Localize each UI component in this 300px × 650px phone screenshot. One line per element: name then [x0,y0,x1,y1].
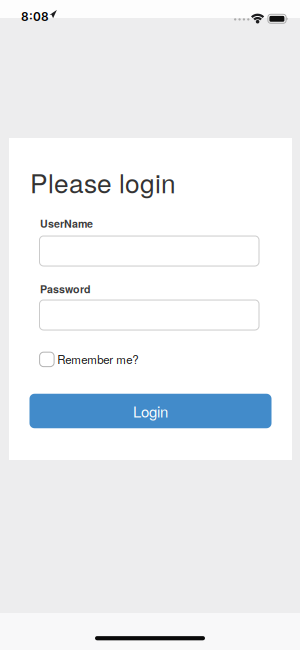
staticText: Please login [30,163,176,201]
staticText: Password [40,281,91,297]
button[interactable] [39,300,259,330]
staticText: Remember me? [57,351,138,367]
staticText: UserName [40,216,93,231]
staticText: Login [133,400,168,422]
button[interactable] [39,236,259,266]
button[interactable]: Login [29,394,271,428]
button[interactable]: Remember me? [39,349,156,368]
staticText: 8:08 [21,9,49,24]
